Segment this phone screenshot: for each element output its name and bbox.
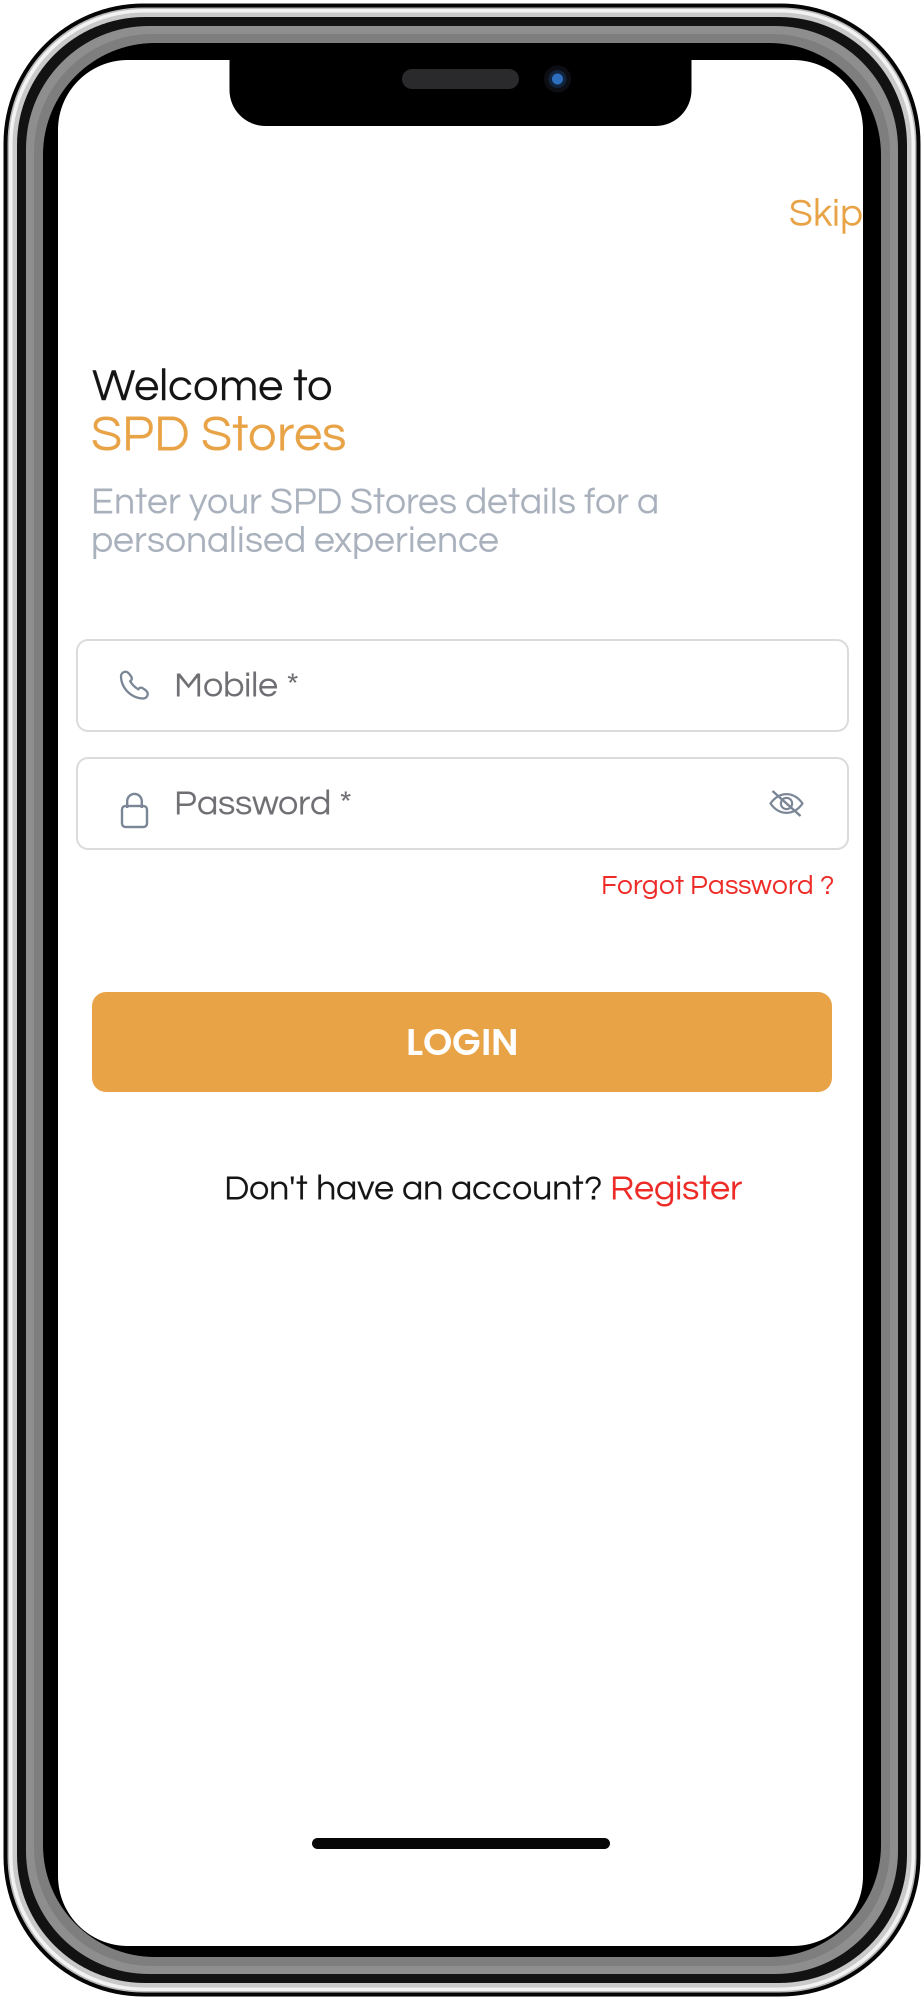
button[interactable]: Forgot Password ?: [589, 861, 846, 910]
button[interactable]: Don't have an account?: [214, 1160, 752, 1217]
button[interactable]: LOGIN: [92, 992, 832, 1092]
staticText: Forgot Password ?: [601, 871, 834, 900]
staticText: Skip: [789, 194, 863, 234]
staticText: LOGIN: [406, 1016, 518, 1068]
button[interactable]: Skip: [771, 182, 865, 246]
staticText: SPD Stores: [91, 409, 346, 461]
staticText: Mobile *: [174, 667, 299, 704]
staticText: Enter your SPD Stores details for a pers…: [91, 483, 659, 560]
staticText: Password *: [174, 785, 352, 822]
staticText: Don't have an account?: [224, 1170, 610, 1207]
button[interactable]: Show password: [769, 790, 804, 816]
staticText: Welcome to: [92, 363, 333, 410]
staticText: Register: [610, 1170, 742, 1207]
